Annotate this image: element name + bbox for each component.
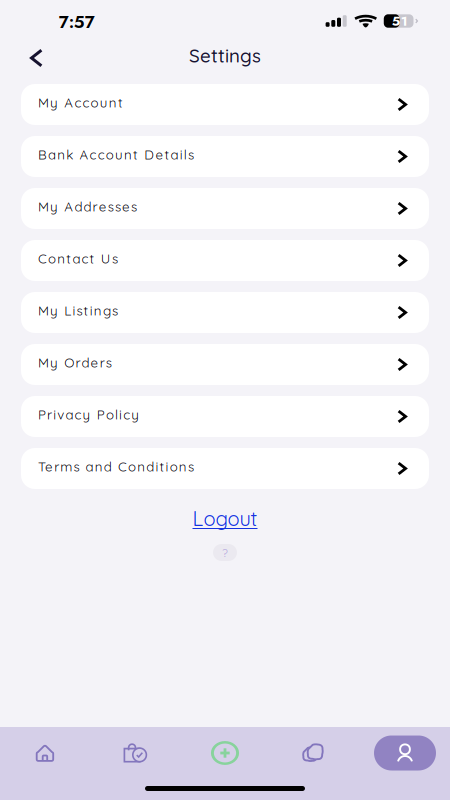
staticText: ? bbox=[222, 545, 228, 560]
button[interactable]: Add listing bbox=[180, 727, 270, 779]
staticText: 7:57 bbox=[59, 9, 95, 34]
staticText: Bank Account Details bbox=[38, 146, 194, 163]
button[interactable]: Back bbox=[0, 45, 59, 81]
button[interactable]: Privacy Policy bbox=[21, 396, 429, 437]
staticText: Contact Us bbox=[38, 250, 118, 267]
button[interactable]: Logout bbox=[178, 489, 271, 536]
staticText: My Addresses bbox=[38, 198, 137, 215]
button[interactable]: My Account bbox=[21, 84, 429, 125]
button[interactable]: Bank Account Details bbox=[21, 136, 429, 177]
staticText: Settings bbox=[189, 44, 261, 67]
button[interactable]: Contact Us bbox=[21, 240, 429, 281]
button[interactable]: My Orders bbox=[21, 344, 429, 385]
button[interactable]: Orders bbox=[90, 727, 180, 779]
button[interactable]: Terms and Conditions bbox=[21, 448, 429, 489]
staticText: 51 bbox=[392, 11, 408, 31]
staticText: My Account bbox=[38, 94, 123, 111]
button[interactable]: Profile bbox=[360, 727, 450, 779]
button[interactable]: Home bbox=[0, 727, 90, 779]
button[interactable]: My Addresses bbox=[21, 188, 429, 229]
button[interactable]: My Listings bbox=[21, 292, 429, 333]
button[interactable]: Saved bbox=[270, 727, 360, 779]
staticText: Privacy Policy bbox=[38, 406, 139, 423]
staticText: Terms and Conditions bbox=[38, 458, 194, 475]
staticText: My Orders bbox=[38, 354, 112, 371]
staticText: Logout bbox=[192, 506, 257, 531]
staticText: My Listings bbox=[38, 302, 118, 319]
